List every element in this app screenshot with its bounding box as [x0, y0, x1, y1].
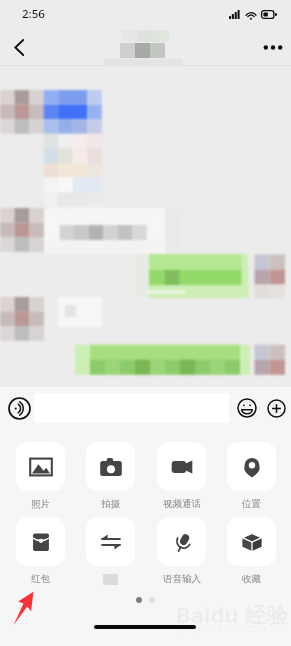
staticText: 2:56 [22, 6, 45, 22]
button[interactable]: 视频通话 [146, 442, 217, 491]
staticText: 拍摄 [101, 498, 120, 510]
button[interactable]: 红包 [5, 517, 76, 566]
button[interactable]: 拍摄 [75, 442, 146, 491]
button[interactable]: 收藏 [216, 517, 287, 566]
button[interactable]: 语音输入 [146, 517, 217, 566]
button[interactable]: Emoji [233, 387, 260, 429]
button[interactable]: 位置 [216, 442, 287, 491]
staticText: jingyan.baidu.com [180, 621, 267, 635]
button[interactable]: Back [0, 30, 38, 65]
staticText: 收藏 [242, 573, 261, 585]
staticText: 照片 [31, 498, 50, 510]
staticText: 视频通话 [163, 498, 201, 510]
button[interactable] [75, 517, 146, 566]
button[interactable]: More options [255, 30, 291, 65]
staticText: 红包 [31, 573, 50, 585]
staticText: Baidu 经验 [176, 599, 289, 629]
staticText: 语音输入 [163, 573, 201, 585]
staticText: 位置 [242, 498, 261, 510]
button[interactable]: 照片 [5, 442, 76, 491]
button[interactable]: Voice input [4, 387, 34, 429]
button[interactable]: More functions [263, 387, 290, 429]
